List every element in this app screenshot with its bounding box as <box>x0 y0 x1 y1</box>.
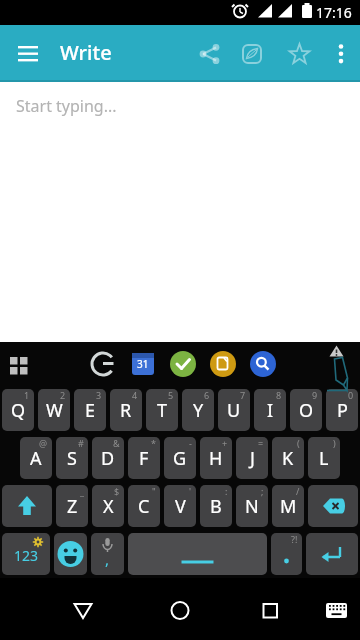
button[interactable]: , <box>91 533 124 575</box>
button[interactable] <box>2 485 52 527</box>
staticText: : <box>225 485 228 497</box>
staticText: N <box>245 494 259 519</box>
button[interactable] <box>250 592 290 632</box>
button[interactable] <box>327 34 357 64</box>
button[interactable] <box>322 596 352 626</box>
staticText: Q <box>11 398 26 423</box>
button[interactable] <box>234 34 270 70</box>
staticText: I <box>267 398 274 423</box>
button[interactable]: 6 <box>182 389 214 431</box>
button[interactable] <box>10 35 46 71</box>
staticText: $ <box>114 485 120 497</box>
button[interactable] <box>4 353 34 383</box>
button[interactable] <box>281 34 317 70</box>
staticText: J <box>250 446 255 471</box>
staticText: 0 <box>348 389 354 401</box>
staticText: K <box>282 446 294 471</box>
staticText: & <box>113 437 120 449</box>
staticText: P <box>337 398 348 423</box>
staticText: _ <box>80 485 84 497</box>
staticText: W <box>46 398 63 423</box>
button[interactable] <box>63 592 103 632</box>
staticText: M <box>280 494 297 519</box>
button[interactable] <box>168 349 198 379</box>
button[interactable]: ' <box>164 485 196 527</box>
staticText: 5 <box>168 389 174 401</box>
staticText: 6 <box>204 389 210 401</box>
button[interactable]: ) <box>308 437 340 479</box>
staticText: Y <box>193 398 204 423</box>
staticText: " <box>152 485 156 497</box>
button[interactable]: + <box>200 437 232 479</box>
staticText: D <box>101 446 115 471</box>
button[interactable]: 2 <box>38 389 70 431</box>
button[interactable]: 123 <box>2 533 50 575</box>
staticText: Z <box>67 494 78 519</box>
staticText: / <box>296 485 300 497</box>
staticText: U <box>227 398 241 423</box>
button[interactable]: # <box>56 437 88 479</box>
staticText: ( <box>297 437 300 449</box>
staticText: 17:16 <box>316 3 352 22</box>
button[interactable]: ?! <box>271 533 302 575</box>
staticText: X <box>103 494 114 519</box>
button[interactable]: 4 <box>110 389 142 431</box>
button[interactable]: $ <box>92 485 124 527</box>
button[interactable] <box>128 349 158 379</box>
staticText: G <box>173 446 187 471</box>
button[interactable]: = <box>236 437 268 479</box>
staticText: ) <box>333 437 336 449</box>
button[interactable] <box>308 485 358 527</box>
staticText: * <box>151 437 156 449</box>
button[interactable] <box>248 349 278 379</box>
staticText: , <box>105 549 110 569</box>
button[interactable]: @ <box>20 437 52 479</box>
button[interactable]: - <box>164 437 196 479</box>
button[interactable]: / <box>272 485 304 527</box>
staticText: Start typing... <box>16 95 117 117</box>
staticText: - <box>189 437 192 449</box>
button[interactable]: & <box>92 437 124 479</box>
button[interactable] <box>54 533 87 575</box>
button[interactable]: ; <box>236 485 268 527</box>
button[interactable]: ( <box>272 437 304 479</box>
button[interactable]: " <box>128 485 160 527</box>
staticText: # <box>78 437 84 449</box>
button[interactable]: _ <box>56 485 88 527</box>
button[interactable]: 3 <box>74 389 106 431</box>
staticText: R <box>120 398 132 423</box>
staticText: Write <box>60 39 112 66</box>
staticText: V <box>175 494 186 519</box>
button[interactable]: 0 <box>326 389 358 431</box>
staticText: L <box>319 446 329 471</box>
button[interactable] <box>160 592 200 632</box>
staticText: S <box>67 446 77 471</box>
button[interactable]: 1 <box>2 389 34 431</box>
staticText: H <box>209 446 223 471</box>
button[interactable] <box>192 34 228 70</box>
staticText: 1 <box>24 389 30 401</box>
staticText: @ <box>39 437 48 449</box>
staticText: ; <box>261 485 264 497</box>
button[interactable] <box>208 349 238 379</box>
staticText: = <box>258 437 264 449</box>
button[interactable]: * <box>128 437 160 479</box>
staticText: 9 <box>312 389 318 401</box>
staticText: O <box>299 398 314 423</box>
staticText: C <box>138 494 150 519</box>
staticText: E <box>85 398 96 423</box>
button[interactable]: : <box>200 485 232 527</box>
staticText: F <box>139 446 149 471</box>
button[interactable] <box>128 533 267 575</box>
button[interactable]: 7 <box>218 389 250 431</box>
button[interactable]: 8 <box>254 389 286 431</box>
button[interactable]: 5 <box>146 389 178 431</box>
staticText: + <box>222 437 228 449</box>
staticText: 4 <box>132 389 138 401</box>
button[interactable] <box>88 349 118 379</box>
button[interactable] <box>320 344 356 386</box>
staticText: ' <box>189 485 192 497</box>
button[interactable] <box>306 533 358 575</box>
staticText: 8 <box>276 389 282 401</box>
button[interactable]: 9 <box>290 389 322 431</box>
